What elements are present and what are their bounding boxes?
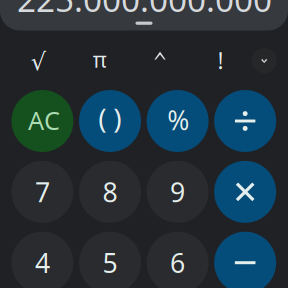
staticText: 4	[35, 245, 50, 280]
staticText: ( )	[98, 99, 121, 136]
button[interactable]: !	[0, 0, 288, 288]
button[interactable]: Power	[0, 0, 288, 288]
staticText: π	[93, 45, 107, 74]
button[interactable]: 7	[0, 0, 288, 288]
button[interactable]: Subtract	[0, 0, 288, 288]
staticText: 8	[102, 174, 117, 209]
staticText: 5	[102, 245, 117, 280]
button[interactable]: Multiply	[0, 0, 288, 288]
button[interactable]: 5	[0, 0, 288, 288]
staticText: AC	[28, 103, 60, 137]
button[interactable]: Divide	[0, 0, 288, 288]
staticText: 7	[35, 174, 50, 209]
staticText: !	[218, 45, 224, 75]
button[interactable]: AC	[0, 0, 288, 288]
staticText: 9	[170, 174, 185, 209]
button[interactable]: Collapse functions	[0, 0, 288, 288]
staticText: 6	[170, 245, 185, 280]
button[interactable]: 4	[0, 0, 288, 288]
button[interactable]: √	[0, 0, 288, 288]
button[interactable]: 8	[0, 0, 288, 288]
button[interactable]: ( )	[0, 0, 288, 288]
staticText: 225.000.000.000	[17, 0, 272, 21]
staticText: √	[31, 48, 46, 75]
staticText: %	[167, 102, 189, 138]
button[interactable]: 9	[0, 0, 288, 288]
button[interactable]: π	[0, 0, 288, 288]
button[interactable]: 6	[0, 0, 288, 288]
button[interactable]: %	[0, 0, 288, 288]
